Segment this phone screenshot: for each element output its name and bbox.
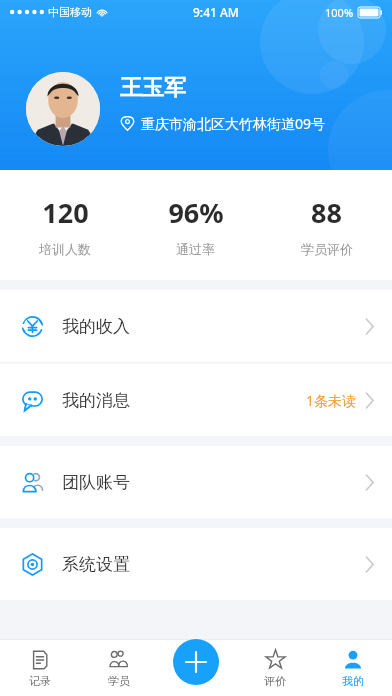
- button[interactable]: 评价: [236, 641, 314, 696]
- staticText: 中国移动: [48, 5, 92, 19]
- staticText: 我的消息: [62, 390, 130, 411]
- button[interactable]: 我的: [314, 641, 392, 696]
- staticText: 评价: [264, 674, 286, 688]
- button[interactable]: 我的消息: [0, 364, 392, 436]
- staticText: 通过率: [176, 241, 215, 257]
- staticText: 学员评价: [301, 241, 353, 257]
- button[interactable]: 88: [261, 194, 392, 257]
- staticText: 9:41 AM: [193, 4, 239, 20]
- button[interactable]: Profile photo: [26, 72, 100, 146]
- staticText: 100%: [325, 5, 354, 20]
- staticText: 记录: [29, 674, 51, 688]
- staticText: 120: [42, 194, 89, 231]
- staticText: 重庆市渝北区大竹林街道09号: [141, 114, 326, 133]
- button[interactable]: Add: [173, 639, 219, 685]
- staticText: 我的: [342, 674, 364, 688]
- button[interactable]: 120: [0, 194, 130, 257]
- button[interactable]: 我的收入: [0, 290, 392, 362]
- staticText: 团队账号: [62, 472, 130, 493]
- button[interactable]: 96%: [130, 194, 261, 257]
- staticText: 96%: [168, 194, 224, 231]
- staticText: 我的收入: [62, 316, 130, 337]
- staticText: 培训人数: [39, 241, 91, 257]
- button[interactable]: 学员: [79, 641, 158, 696]
- staticText: 1条未读: [306, 391, 357, 410]
- staticText: 学员: [108, 674, 130, 688]
- staticText: 王玉军: [120, 74, 186, 102]
- staticText: 系统设置: [62, 554, 130, 575]
- button[interactable]: 记录: [0, 641, 79, 696]
- staticText: 88: [311, 194, 342, 231]
- button[interactable]: 系统设置: [0, 528, 392, 600]
- button[interactable]: 团队账号: [0, 446, 392, 518]
